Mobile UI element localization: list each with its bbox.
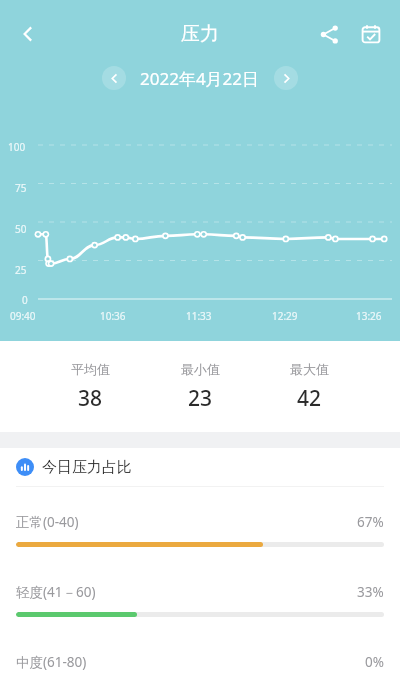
staticText: 23 <box>188 384 213 413</box>
staticText: 67% <box>357 513 384 531</box>
staticText: 中度(61-80) <box>16 653 87 671</box>
staticText: 0% <box>365 653 384 671</box>
staticText: 压力 <box>181 22 219 46</box>
staticText: 11:33 <box>186 309 212 323</box>
staticText: 今日压力占比 <box>42 458 132 477</box>
staticText: 100 <box>8 140 26 154</box>
staticText: 0 <box>22 293 28 307</box>
staticText: 轻度(41－60) <box>16 583 96 601</box>
staticText: 33% <box>357 583 384 601</box>
button[interactable]: Next day <box>274 66 298 90</box>
staticText: 38 <box>78 384 103 413</box>
button[interactable]: Back <box>6 12 50 56</box>
staticText: 42 <box>297 384 322 413</box>
staticText: 正常(0-40) <box>16 513 79 531</box>
staticText: 最小值 <box>181 361 220 377</box>
staticText: 09:40 <box>10 309 36 323</box>
button[interactable]: Previous day <box>102 66 126 90</box>
staticText: 75 <box>15 181 27 195</box>
button[interactable]: Calendar <box>350 13 392 55</box>
button[interactable]: Share <box>308 13 350 55</box>
staticText: 平均值 <box>71 361 110 377</box>
staticText: 最大值 <box>290 361 329 377</box>
staticText: 25 <box>15 263 27 277</box>
staticText: 2022年4月22日 <box>140 67 260 90</box>
staticText: 12:29 <box>272 309 298 323</box>
staticText: 13:26 <box>356 309 382 323</box>
staticText: 10:36 <box>100 309 126 323</box>
staticText: 50 <box>15 222 27 236</box>
